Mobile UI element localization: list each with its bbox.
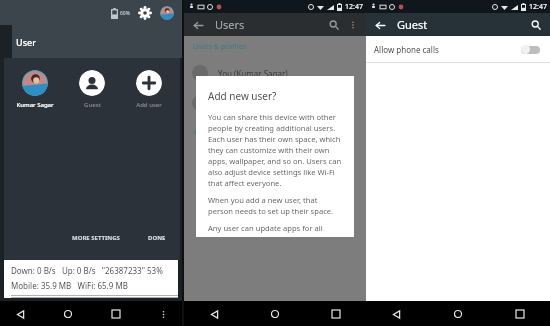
button[interactable]: Kumar Sagar <box>9 68 61 111</box>
button[interactable]: Settings <box>138 6 152 20</box>
button[interactable]: Back <box>373 18 387 32</box>
button[interactable]: Search <box>327 18 341 32</box>
staticText: + <box>192 124 199 139</box>
button[interactable]: Back <box>388 306 404 322</box>
button[interactable]: Back <box>206 306 222 322</box>
staticText: Add user <box>136 101 162 109</box>
staticText: Add new user? <box>208 89 277 103</box>
staticText: You can share this device with other peo… <box>208 112 343 188</box>
button[interactable]: Home <box>267 306 283 322</box>
button[interactable] <box>184 88 366 118</box>
staticText: 12:47 <box>529 2 547 12</box>
staticText: Guest <box>84 101 101 109</box>
staticText: Any user can update apps for all other u… <box>208 223 343 237</box>
staticText: 12:47 <box>345 2 363 12</box>
button[interactable]: DONE <box>142 230 172 246</box>
button[interactable]: Recent apps <box>512 306 528 322</box>
staticText: Down: 0 B/s Up: 0 B/s "26387233" 53% <box>11 265 163 276</box>
staticText: Guest <box>397 17 428 32</box>
button[interactable]: Home <box>60 306 76 322</box>
button[interactable]: + <box>184 118 366 144</box>
button[interactable]: More options <box>347 19 359 31</box>
button[interactable]: More options <box>156 307 170 321</box>
button[interactable]: You (Kumar Sagar) <box>184 58 366 88</box>
button[interactable]: MORE SETTINGS <box>66 230 126 246</box>
staticText: Users & profiles <box>193 42 246 52</box>
staticText: MORE SETTINGS <box>72 234 120 242</box>
button[interactable]: Search <box>529 18 543 32</box>
staticText: When you add a new user, that person nee… <box>208 195 343 216</box>
button[interactable]: Add user <box>123 68 175 111</box>
button[interactable]: Guest <box>66 68 118 111</box>
button[interactable]: Recent apps <box>328 306 344 322</box>
staticText: DONE <box>148 234 166 242</box>
button[interactable]: Allow phone calls <box>366 36 550 62</box>
staticText: Mobile: 35.9 MB WiFi: 65.9 MB <box>11 280 128 291</box>
staticText: Allow phone calls <box>374 44 439 55</box>
button[interactable]: Profile <box>160 6 174 20</box>
staticText: Kumar Sagar <box>16 101 54 109</box>
staticText: You (Kumar Sagar) <box>218 68 288 79</box>
button[interactable]: Home <box>450 306 466 322</box>
staticText: User <box>16 36 36 48</box>
button[interactable]: Back <box>191 18 205 32</box>
button[interactable]: Recent apps <box>108 306 124 322</box>
staticText: Users <box>215 17 245 32</box>
button[interactable]: Back <box>12 306 28 322</box>
staticText: 60% <box>120 10 130 17</box>
